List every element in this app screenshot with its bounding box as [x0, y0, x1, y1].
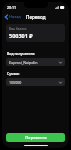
staticText: Ваш баланс: — [9, 27, 28, 31]
staticText: 500301 ₽ — [9, 32, 33, 39]
button[interactable]: Euprosi_Naipolin — [6, 58, 65, 66]
staticText: Euprosi_Naipolin — [9, 60, 59, 65]
button[interactable]: Ваш баланс: — [6, 24, 65, 42]
staticText: 20:11 — [7, 5, 16, 10]
button[interactable]: Назад — [2, 13, 24, 20]
staticText: Сумма: — [7, 71, 20, 76]
staticText: 100000 — [9, 80, 59, 85]
other: Open list — [59, 61, 62, 64]
staticText: Перевести — [25, 135, 47, 140]
button[interactable]: Перевести — [6, 133, 65, 142]
staticText: Вид получателя: — [7, 51, 36, 56]
staticText: Перевод — [26, 14, 46, 20]
staticText: Назад — [9, 14, 21, 19]
button[interactable]: 100000 — [6, 78, 65, 86]
other: Open list — [59, 81, 62, 84]
